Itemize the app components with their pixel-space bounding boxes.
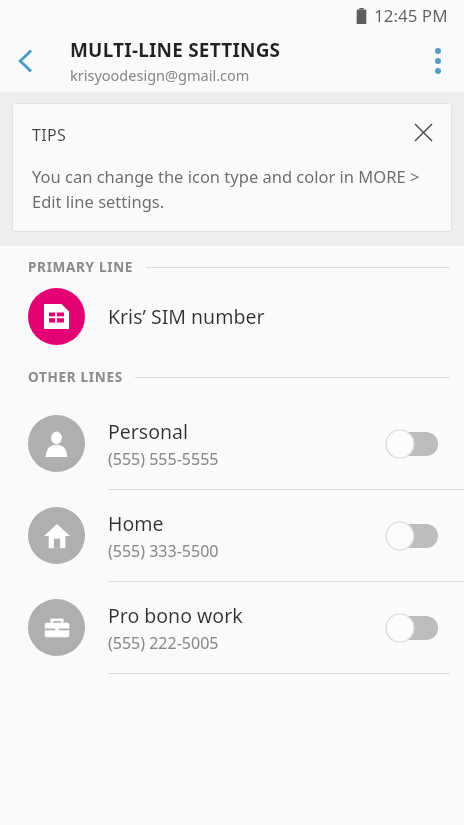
button[interactable]: Toggle Home xyxy=(382,512,442,560)
staticText: Kris’ SIM number xyxy=(108,303,265,330)
staticText: 12:45 PM xyxy=(374,4,448,27)
staticText: PRIMARY LINE xyxy=(28,258,134,276)
button[interactable]: Close tips xyxy=(400,109,446,155)
button[interactable]: Kris’ SIM number xyxy=(0,280,464,352)
staticText: Personal xyxy=(108,418,189,445)
staticText: (555) 222-5005 xyxy=(108,632,219,654)
button[interactable]: Toggle Pro bono work xyxy=(382,604,442,652)
staticText: krisyoodesign@gmail.com xyxy=(70,65,250,85)
staticText: Pro bono work xyxy=(108,602,243,629)
staticText: You can change the icon type and color i… xyxy=(32,165,428,213)
button[interactable]: Personal xyxy=(0,398,464,489)
staticText: (555) 333-5500 xyxy=(108,540,219,562)
staticText: Home xyxy=(108,510,164,537)
button[interactable]: Home xyxy=(0,490,464,581)
button[interactable]: Pro bono work xyxy=(0,582,464,673)
button[interactable]: More options xyxy=(412,35,464,87)
staticText: MULTI-LINE SETTINGS xyxy=(70,37,281,63)
staticText: (555) 555-5555 xyxy=(108,448,219,470)
staticText: TIPS xyxy=(32,124,66,146)
button[interactable]: Navigate up xyxy=(0,35,52,87)
staticText: OTHER LINES xyxy=(28,368,123,386)
button[interactable]: Toggle Personal xyxy=(382,420,442,468)
